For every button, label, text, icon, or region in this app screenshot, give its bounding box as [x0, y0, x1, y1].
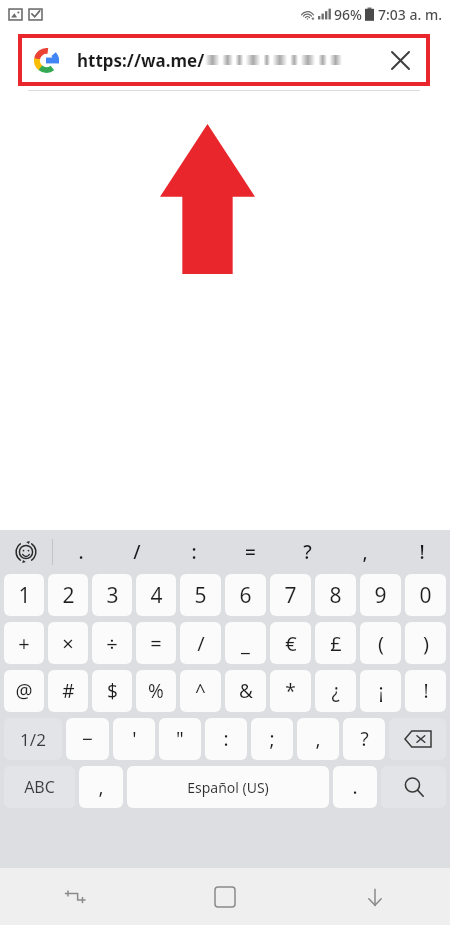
staticText: +	[18, 630, 30, 657]
button[interactable]: ;	[251, 718, 293, 760]
staticText: "	[176, 726, 184, 752]
button[interactable]: ¿	[315, 670, 356, 712]
staticText: 1/2	[20, 728, 46, 751]
button[interactable]: Backspace	[389, 718, 446, 760]
button[interactable]: Hide keyboard	[300, 868, 450, 925]
staticText: ¿	[331, 678, 340, 704]
button[interactable]: =	[136, 622, 176, 664]
button[interactable]: !	[393, 530, 450, 574]
staticText: $	[107, 678, 118, 704]
button[interactable]: ¡	[360, 670, 401, 712]
staticText: =	[245, 539, 256, 565]
button[interactable]: 4	[136, 574, 176, 616]
staticText: (	[378, 630, 384, 657]
button[interactable]: Español (US)	[127, 766, 329, 808]
button[interactable]: 2	[48, 574, 88, 616]
button[interactable]: /	[109, 530, 165, 574]
button[interactable]: '	[113, 718, 155, 760]
button[interactable]: ,	[79, 766, 123, 808]
button[interactable]: .	[53, 530, 109, 574]
button[interactable]: €	[270, 622, 311, 664]
staticText: ,	[315, 726, 321, 752]
button[interactable]: ABC	[4, 766, 75, 808]
button[interactable]: (	[360, 622, 401, 664]
button[interactable]: @	[4, 670, 44, 712]
button[interactable]: :	[205, 718, 247, 760]
staticText: .	[352, 774, 358, 800]
staticText: https://wa.me/	[77, 49, 205, 72]
button[interactable]: %	[136, 670, 176, 712]
button[interactable]: 6	[225, 574, 266, 616]
staticText: Español (US)	[187, 778, 269, 797]
staticText: /	[133, 539, 141, 565]
button[interactable]: 8	[315, 574, 356, 616]
button[interactable]: ,	[297, 718, 339, 760]
staticText: &	[239, 678, 253, 704]
staticText: @	[15, 678, 33, 704]
button[interactable]: /	[180, 622, 221, 664]
staticText: 3	[106, 581, 119, 610]
button[interactable]: +	[4, 622, 44, 664]
button[interactable]: ×	[48, 622, 88, 664]
button[interactable]: !	[405, 670, 446, 712]
button[interactable]: #	[48, 670, 88, 712]
staticText: !	[423, 678, 429, 704]
staticText: 96%	[334, 5, 362, 24]
button[interactable]: :	[165, 530, 222, 574]
button[interactable]: Clear	[380, 40, 420, 80]
staticText: £	[330, 630, 342, 657]
button[interactable]: 7	[270, 574, 311, 616]
button[interactable]: .	[333, 766, 377, 808]
button[interactable]: ?	[279, 530, 336, 574]
button[interactable]: ?	[343, 718, 385, 760]
button[interactable]: £	[315, 622, 356, 664]
staticText: ¡	[378, 678, 384, 704]
button[interactable]: 9	[360, 574, 401, 616]
button[interactable]: −	[66, 718, 109, 760]
staticText: 5	[194, 581, 207, 610]
staticText: .	[78, 539, 84, 565]
staticText: :	[223, 726, 229, 752]
button[interactable]: $	[92, 670, 132, 712]
staticText: ABC	[24, 776, 55, 798]
staticText: 1	[18, 581, 31, 610]
button[interactable]: 3	[92, 574, 132, 616]
button[interactable]: Home	[150, 868, 300, 925]
staticText: ^	[195, 678, 206, 704]
button[interactable]: =	[222, 530, 279, 574]
staticText: !	[419, 539, 425, 565]
staticText: 2	[62, 581, 75, 610]
staticText: 7:03 a. m.	[378, 5, 442, 24]
button[interactable]: 0	[405, 574, 446, 616]
button[interactable]: 1	[4, 574, 44, 616]
button[interactable]: Recents	[0, 868, 150, 925]
staticText: −	[82, 726, 93, 752]
staticText: ,	[98, 774, 104, 800]
staticText: ;	[269, 726, 275, 752]
staticText: 8	[329, 581, 342, 610]
button[interactable]: Emoji	[0, 530, 52, 574]
staticText: *	[285, 678, 296, 704]
button[interactable]: _	[225, 622, 266, 664]
button[interactable]: ÷	[92, 622, 132, 664]
button[interactable]: ,	[336, 530, 393, 574]
staticText: :	[191, 539, 197, 565]
staticText: 6	[239, 581, 252, 610]
staticText: ?	[303, 539, 312, 565]
staticText: €	[285, 630, 297, 657]
staticText: =	[150, 630, 162, 657]
button[interactable]: )	[405, 622, 446, 664]
staticText: '	[132, 726, 137, 752]
staticText: %	[148, 678, 164, 704]
button[interactable]: *	[270, 670, 311, 712]
button[interactable]: ^	[180, 670, 221, 712]
button[interactable]: &	[225, 670, 266, 712]
button[interactable]: 1/2	[4, 718, 62, 760]
button[interactable]: "	[159, 718, 201, 760]
staticText: ÷	[106, 630, 118, 657]
button[interactable]: Search	[381, 766, 446, 808]
button[interactable]: https://wa.me/	[22, 38, 426, 82]
staticText: 7	[284, 581, 297, 610]
staticText: 9	[374, 581, 387, 610]
button[interactable]: 5	[180, 574, 221, 616]
